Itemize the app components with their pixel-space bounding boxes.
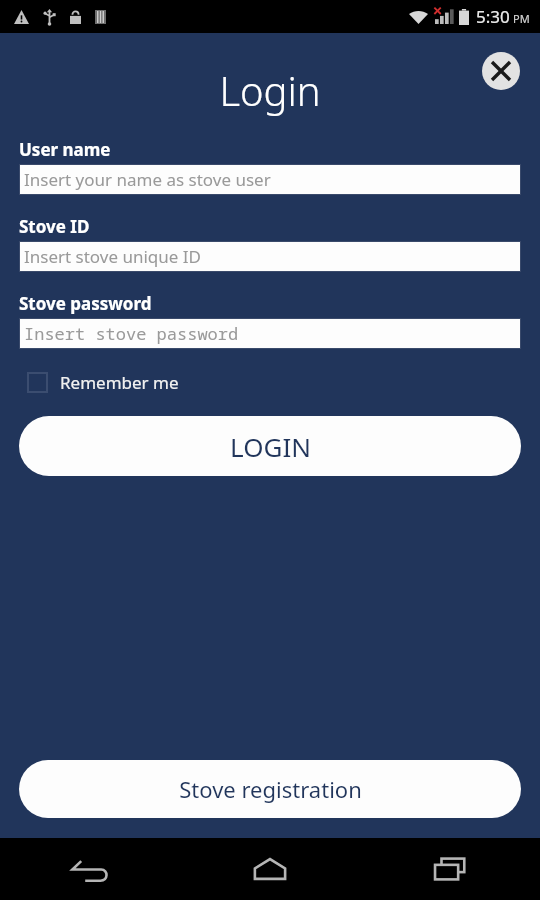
staticText: Stove ID <box>19 215 90 238</box>
staticText: Insert stove password <box>24 322 239 345</box>
staticText: PM <box>513 11 530 26</box>
button[interactable]: Remember me <box>19 365 521 400</box>
staticText: User name <box>19 138 111 161</box>
staticText: Remember me <box>60 371 179 394</box>
button[interactable]: Insert your name as stove user <box>19 164 521 195</box>
staticText: LOGIN <box>230 429 311 464</box>
staticText: Stove registration <box>179 774 362 804</box>
button[interactable]: Insert stove unique ID <box>19 241 521 272</box>
staticText: 5:30 <box>476 5 510 28</box>
staticText: Stove password <box>19 292 152 315</box>
staticText: Insert stove unique ID <box>24 245 201 268</box>
staticText: Insert your name as stove user <box>24 168 271 191</box>
staticText: Login <box>219 63 321 117</box>
button[interactable]: Stove registration <box>19 760 521 818</box>
button[interactable]: Close <box>482 52 520 90</box>
button[interactable]: Recent apps <box>360 838 540 900</box>
button[interactable]: Home <box>180 838 360 900</box>
button[interactable]: LOGIN <box>19 416 521 476</box>
button[interactable]: Insert stove password <box>19 318 521 349</box>
button[interactable]: Back <box>0 838 180 900</box>
